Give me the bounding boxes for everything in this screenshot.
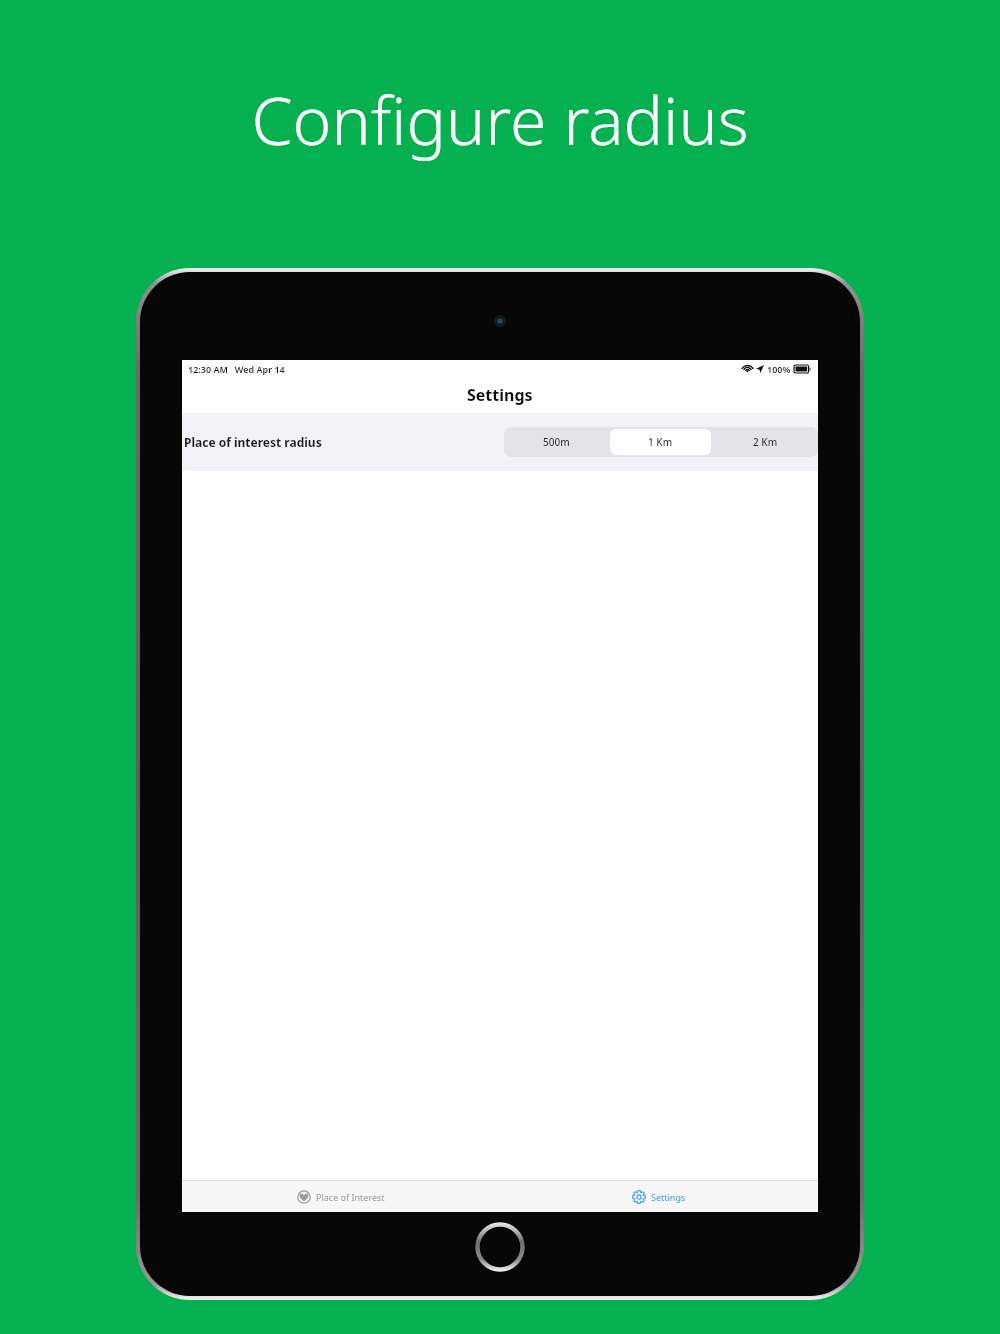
staticText: Configure radius [0,74,1000,164]
staticText: 100% [767,363,791,375]
staticText: Place of Interest [316,1191,385,1203]
button[interactable]: Settings [620,1185,698,1209]
staticText: Place of interest radius [184,434,322,450]
staticText: Settings [651,1191,686,1203]
button[interactable]: 1 Km [610,429,711,455]
other: Settings [632,1190,646,1204]
button[interactable]: 500m [506,429,606,455]
staticText: 500m [543,435,570,449]
button[interactable]: 2 Km [715,429,816,455]
staticText: Settings [467,384,533,406]
button[interactable]: Place of Interest [285,1185,397,1209]
staticText: 12:30 AM Wed Apr 14 [188,363,285,375]
staticText: 2 Km [753,435,778,449]
staticText: 1 Km [648,435,673,449]
